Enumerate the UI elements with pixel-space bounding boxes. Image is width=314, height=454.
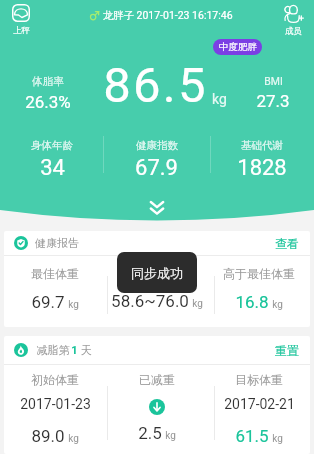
staticText: 86.5: [103, 57, 208, 114]
staticText: 中度肥胖: [219, 41, 257, 53]
staticText: 58.6~76.0: [111, 291, 189, 311]
button[interactable]: 上秤: [6, 4, 36, 36]
button[interactable]: 减脂第: [4, 336, 310, 364]
staticText: 目标体重: [235, 372, 283, 387]
staticText: 查看: [275, 236, 299, 251]
staticText: 61.5: [235, 426, 269, 446]
staticText: 天: [78, 343, 92, 357]
staticText: 上秤: [13, 25, 30, 36]
button[interactable]: 中度肥胖: [213, 39, 262, 55]
staticText: 健康报告: [35, 236, 79, 250]
staticText: kg: [272, 433, 283, 445]
button[interactable]: 成员: [277, 4, 309, 37]
staticText: [156, 266, 159, 280]
staticText: 1: [71, 344, 78, 357]
staticText: 2017-02-21: [224, 396, 295, 412]
button[interactable]: 展开: [139, 190, 175, 226]
staticText: 成员: [285, 26, 302, 37]
staticText: kg: [272, 299, 283, 311]
staticText: 龙胖子 2017-01-23 16:17:46: [102, 9, 233, 22]
staticText: 同步成功: [131, 265, 183, 281]
staticText: kg: [165, 430, 176, 442]
staticText: 1828: [237, 155, 287, 181]
staticText: 初始体重: [31, 372, 79, 387]
staticText: 26.3%: [25, 92, 71, 112]
staticText: kg: [68, 433, 79, 445]
staticText: BMI: [264, 75, 283, 87]
staticText: kg: [212, 91, 227, 107]
staticText: 基础代谢: [241, 139, 283, 152]
staticText: kg: [68, 299, 79, 311]
staticText: 27.3: [256, 91, 290, 111]
staticText: 身体年龄: [31, 139, 73, 152]
staticText: 89.0: [31, 426, 65, 446]
button[interactable]: 健康报告: [4, 231, 310, 255]
staticText: 67.9: [135, 155, 178, 181]
staticText: 34: [40, 155, 65, 181]
staticText: 2017-01-23: [20, 396, 91, 412]
staticText: 69.7: [31, 292, 65, 312]
staticText: 健康指数: [136, 139, 178, 152]
staticText: 重置: [275, 343, 299, 358]
staticText: 已减重: [139, 372, 175, 387]
staticText: 2.5: [138, 423, 162, 443]
staticText: 最佳体重: [31, 266, 79, 281]
staticText: 体脂率: [32, 75, 64, 88]
staticText: 16.8: [235, 292, 269, 312]
staticText: 高于最佳体重: [223, 266, 295, 281]
staticText: 减脂第: [35, 343, 71, 357]
staticText: kg: [192, 298, 203, 310]
